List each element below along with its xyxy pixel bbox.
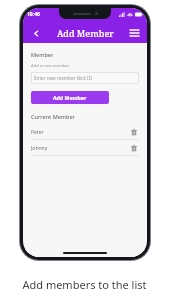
button[interactable]: Menu [126,25,142,41]
button[interactable]: Delete Peter [128,127,139,138]
staticText: 10:46 [27,11,40,18]
staticText: Add members to the list [22,277,147,292]
staticText: Member [31,51,54,58]
staticText: Johnny [31,145,48,152]
staticText: Current Member [31,113,75,120]
button[interactable]: Add Member [31,91,109,104]
button[interactable]: Johnny [31,142,139,155]
staticText: Add Member [53,94,87,101]
staticText: Enter new member Nick ID [34,75,93,81]
button[interactable]: Delete Johnny [128,143,139,154]
staticText: Peter [31,129,44,136]
staticText: Add Member [57,27,114,39]
button[interactable]: Peter [31,126,139,139]
button[interactable]: Enter new member Nick ID [31,72,139,84]
button[interactable]: Back [28,25,44,41]
staticText: Add a new member [31,63,70,69]
